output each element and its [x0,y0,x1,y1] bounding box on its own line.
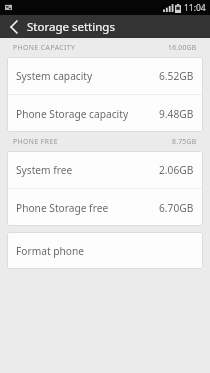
staticText: 9.48GB [159,107,194,121]
staticText: Storage settings [27,19,115,35]
button[interactable]: Phone Storage capacity [7,95,203,132]
staticText: System free [16,163,73,177]
staticText: Phone Storage free [16,201,109,215]
staticText: 8.75GB [172,137,197,146]
button[interactable]: Phone Storage free [7,189,203,226]
staticText: PHONE FREE [13,137,58,146]
button[interactable]: Format phone [7,232,203,269]
staticText: 16.00GB [168,43,197,52]
button[interactable]: System free [7,151,203,188]
button[interactable]: System capacity [7,57,203,94]
button[interactable]: Back [0,15,27,38]
staticText: 2.06GB [159,163,194,177]
staticText: 6.52GB [159,69,194,83]
staticText: Format phone [16,244,84,258]
staticText: Phone Storage capacity [16,107,129,121]
staticText: System capacity [16,69,93,83]
staticText: 6.70GB [159,201,194,215]
staticText: PHONE CAPACITY [13,43,76,52]
staticText: 11:04 [184,2,206,14]
